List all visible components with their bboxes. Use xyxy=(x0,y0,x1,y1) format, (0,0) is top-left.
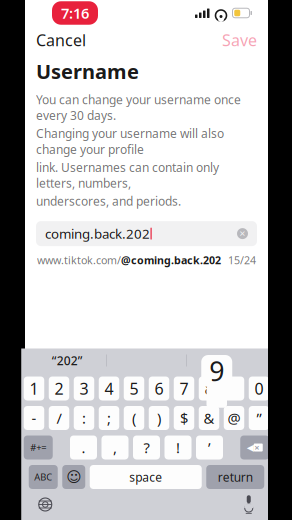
button[interactable]: / xyxy=(49,406,69,430)
staticText: “202” xyxy=(52,352,83,368)
staticText: 4 xyxy=(104,378,113,399)
button[interactable]: #+= xyxy=(24,435,53,459)
staticText: 1 xyxy=(29,378,38,399)
staticText: coming.back.202 xyxy=(45,225,150,242)
button[interactable]: 4 xyxy=(99,376,119,400)
staticText: space xyxy=(129,469,162,485)
staticText: × xyxy=(254,441,259,454)
button[interactable]: 7 xyxy=(174,376,194,400)
button[interactable]: Delete xyxy=(240,435,269,459)
staticText: 8 xyxy=(204,378,213,399)
button[interactable]: ) xyxy=(149,406,169,430)
staticText: underscores, and periods. xyxy=(36,193,181,209)
staticText: @coming.back.202 xyxy=(121,253,221,267)
staticText: , xyxy=(113,438,117,457)
button[interactable]: space xyxy=(90,465,202,489)
button[interactable]: 8 xyxy=(199,376,219,400)
staticText: return xyxy=(218,469,253,485)
staticText: Changing your username will also change … xyxy=(36,125,224,157)
button[interactable]: Save xyxy=(212,22,267,58)
staticText: ◀ xyxy=(247,442,254,453)
button[interactable]: @ xyxy=(224,406,244,430)
staticText: Username xyxy=(36,58,139,85)
staticText: 3 xyxy=(79,378,88,399)
button[interactable]: ABC xyxy=(29,465,58,489)
button[interactable]: coming.back.202 xyxy=(36,221,257,246)
staticText: ! xyxy=(176,438,180,457)
staticText: ” xyxy=(256,408,261,428)
staticText: 6 xyxy=(154,378,163,399)
button[interactable]: ( xyxy=(124,406,144,430)
button[interactable]: Cancel xyxy=(26,22,96,58)
staticText: / xyxy=(56,408,61,428)
button[interactable]: Emoji xyxy=(62,465,85,489)
staticText: @ xyxy=(227,408,240,428)
button[interactable]: ’ xyxy=(196,435,223,459)
staticText: - xyxy=(31,408,36,428)
button[interactable]: Dictation xyxy=(231,491,267,518)
staticText: ✕ xyxy=(239,229,246,238)
button[interactable]: , xyxy=(101,435,128,459)
button[interactable]: 1 xyxy=(24,376,44,400)
button[interactable]: ? xyxy=(133,435,160,459)
button[interactable]: “202” xyxy=(28,349,106,371)
staticText: ( xyxy=(132,408,136,428)
button[interactable]: & xyxy=(199,406,219,430)
button[interactable]: 5 xyxy=(124,376,144,400)
staticText: Save xyxy=(222,29,257,51)
button[interactable]: 0 xyxy=(249,376,269,400)
staticText: 0 xyxy=(254,378,263,399)
staticText: & xyxy=(203,408,214,428)
staticText: 9 xyxy=(209,353,224,389)
staticText: www.tiktok.com/ xyxy=(37,253,121,267)
button[interactable]: ” xyxy=(249,406,269,430)
staticText: : xyxy=(82,408,86,428)
button[interactable] xyxy=(187,349,265,371)
staticText: $ xyxy=(180,408,188,428)
staticText: . xyxy=(81,438,85,457)
staticText: 5 xyxy=(129,378,138,399)
staticText: ☺ xyxy=(66,469,81,485)
staticText: 7 xyxy=(179,378,188,399)
button[interactable]: ! xyxy=(164,435,191,459)
button[interactable]: 6 xyxy=(149,376,169,400)
staticText: 2 xyxy=(54,378,63,399)
staticText: You can change your username once every … xyxy=(36,92,241,123)
staticText: ? xyxy=(143,438,149,457)
button[interactable]: 3 xyxy=(74,376,94,400)
staticText: ’ xyxy=(208,438,211,457)
staticText: Cancel xyxy=(36,29,86,51)
button[interactable]: ; xyxy=(99,406,119,430)
button[interactable]: . xyxy=(70,435,97,459)
staticText: 7:16 xyxy=(61,3,89,23)
button[interactable]: : xyxy=(74,406,94,430)
button[interactable]: $ xyxy=(174,406,194,430)
staticText: ; xyxy=(107,408,111,428)
button[interactable]: Next keyboard xyxy=(26,491,64,517)
staticText: ) xyxy=(157,408,161,428)
button[interactable]: 2 xyxy=(49,376,69,400)
staticText: link. Usernames can contain only letters… xyxy=(36,159,219,191)
button[interactable]: - xyxy=(24,406,44,430)
button[interactable]: return xyxy=(206,465,264,489)
staticText: ABC xyxy=(34,471,52,483)
staticText: 15/24 xyxy=(228,253,256,267)
staticText: #+= xyxy=(30,441,46,454)
